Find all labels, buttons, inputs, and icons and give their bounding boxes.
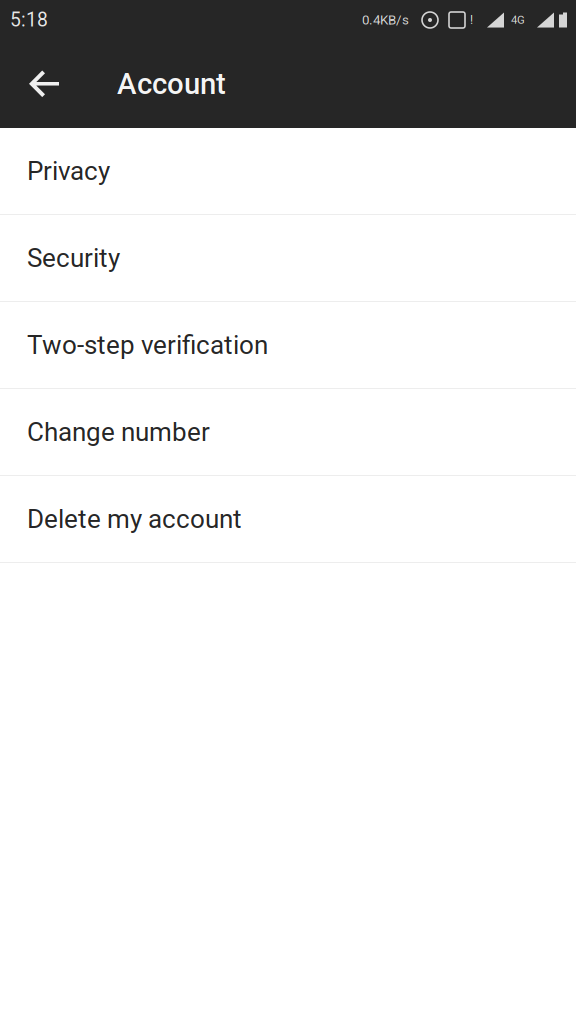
button[interactable]: Security [0, 215, 576, 302]
staticText: ! [470, 13, 473, 27]
button[interactable]: Back [0, 40, 117, 128]
staticText: Change number [27, 417, 210, 447]
staticText: Account [117, 67, 226, 101]
button[interactable]: Two-step verification [0, 302, 576, 389]
staticText: 4G [511, 13, 525, 27]
button[interactable]: Change number [0, 389, 576, 476]
staticText: Security [27, 243, 120, 273]
staticText: Two-step verification [27, 330, 268, 360]
staticText: 0.4KB/s [362, 12, 409, 28]
button[interactable]: Delete my account [0, 476, 576, 563]
staticText: 5:18 [10, 9, 48, 31]
button[interactable]: Privacy [0, 128, 576, 215]
staticText: Delete my account [27, 504, 242, 534]
staticText: Privacy [27, 156, 110, 186]
